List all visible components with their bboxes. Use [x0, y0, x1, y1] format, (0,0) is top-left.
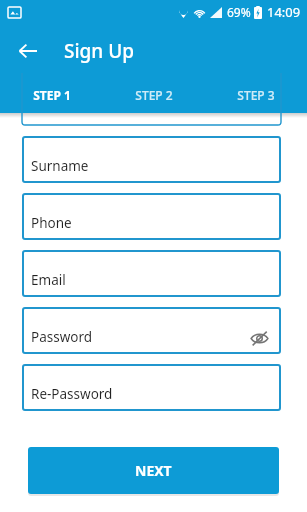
- staticText: 69%: [227, 4, 251, 20]
- button[interactable]: Re-Password: [22, 364, 281, 411]
- staticText: STEP 1: [33, 87, 71, 103]
- staticText: 14:09: [267, 3, 301, 21]
- staticText: Email: [31, 271, 66, 289]
- staticText: Password: [31, 328, 93, 346]
- button[interactable]: Back: [8, 31, 48, 71]
- staticText: Sign Up: [64, 38, 135, 64]
- button[interactable]: Toggle password visibility: [247, 326, 271, 350]
- button[interactable]: NEXT: [28, 447, 279, 494]
- staticText: Surname: [31, 157, 89, 175]
- button[interactable]: [22, 113, 281, 125]
- button[interactable]: Phone: [22, 193, 281, 240]
- button[interactable]: Password: [22, 307, 281, 354]
- staticText: Re-Password: [31, 385, 113, 403]
- button[interactable]: STEP 1: [0, 77, 103, 113]
- button[interactable]: STEP 3: [205, 77, 307, 113]
- button[interactable]: Surname: [22, 136, 281, 183]
- button[interactable]: Email: [22, 250, 281, 297]
- staticText: STEP 2: [135, 87, 173, 103]
- staticText: STEP 3: [237, 87, 275, 103]
- staticText: NEXT: [135, 461, 172, 480]
- staticText: Phone: [31, 214, 72, 232]
- button[interactable]: STEP 2: [103, 77, 205, 113]
